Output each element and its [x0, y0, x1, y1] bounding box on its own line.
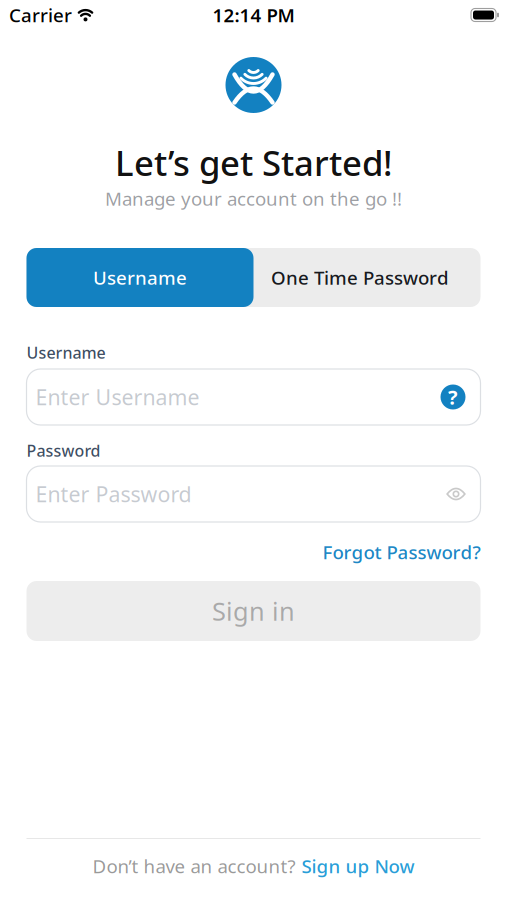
- staticText: Enter Password: [35, 480, 191, 508]
- staticText: Let’s get Started!: [115, 139, 392, 185]
- button[interactable]: Forgot Password?: [322, 542, 480, 562]
- staticText: Sign in: [212, 594, 295, 628]
- staticText: Forgot Password?: [322, 540, 480, 564]
- staticText: Don’t have an account?: [92, 854, 295, 878]
- button[interactable]: Sign in: [26, 581, 480, 641]
- staticText: Username: [93, 265, 187, 290]
- staticText: ?: [448, 384, 458, 410]
- button[interactable]: Sign up Now: [301, 854, 414, 878]
- staticText: Enter Username: [35, 383, 199, 411]
- button[interactable]: Enter Username: [26, 369, 480, 425]
- staticText: Password: [26, 440, 100, 461]
- button[interactable]: Username: [26, 248, 253, 307]
- button[interactable]: Help: [440, 384, 465, 409]
- button[interactable]: Enter Password: [26, 466, 480, 522]
- staticText: One Time Password: [271, 265, 449, 290]
- staticText: Carrier: [9, 3, 72, 27]
- button[interactable]: One Time Password: [253, 248, 480, 307]
- staticText: Username: [26, 342, 105, 363]
- staticText: Sign up Now: [301, 854, 414, 878]
- staticText: Manage your account on the go !!: [105, 186, 402, 211]
- staticText: 12:14 PM: [212, 3, 294, 27]
- button[interactable]: Show password: [446, 487, 465, 500]
